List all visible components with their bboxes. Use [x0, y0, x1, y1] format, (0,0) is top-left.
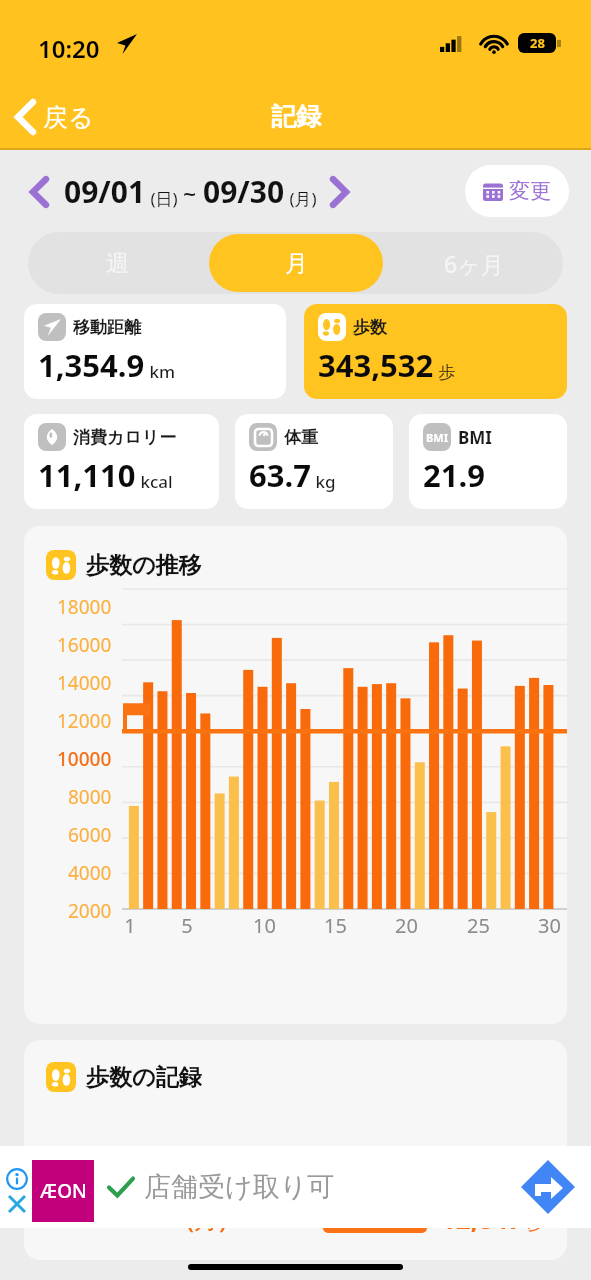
button[interactable]: 体重 — [235, 414, 393, 509]
staticText: (日) — [146, 187, 183, 210]
button[interactable]: 消費カロリー — [24, 414, 219, 509]
staticText: 5 — [181, 912, 193, 939]
staticText: 1 — [124, 912, 136, 939]
staticText: 10000 — [57, 746, 112, 772]
staticText: 歩数の記録 — [86, 1063, 202, 1092]
staticText: 戻る — [43, 102, 94, 133]
staticText: 6ヶ月 — [444, 248, 504, 279]
staticText: 09/30 — [203, 171, 285, 212]
staticText: 11,110 — [38, 454, 136, 496]
staticText: 歩数 — [353, 317, 387, 338]
staticText: 25 — [467, 912, 490, 939]
staticText: 6000 — [68, 822, 112, 848]
staticText: ÆON — [40, 1178, 87, 1204]
staticText: 12,847 — [441, 1201, 523, 1236]
staticText: km — [145, 360, 176, 383]
staticText: 343,532 — [318, 344, 434, 386]
staticText: 18000 — [57, 594, 112, 620]
button[interactable]: 戻る — [10, 92, 100, 142]
staticText: kg — [311, 470, 336, 493]
staticText: 週 — [106, 249, 129, 278]
staticText: 記録 — [271, 101, 321, 132]
staticText: 21.9 — [423, 454, 485, 496]
button[interactable]: 移動距離 — [24, 304, 286, 399]
staticText: 月 — [285, 249, 308, 278]
staticText: 店舗受け取り可 — [144, 1170, 335, 1204]
button[interactable]: 変更 — [465, 165, 569, 217]
staticText: 2024/09/02 (月) — [46, 1201, 227, 1235]
staticText: 変更 — [509, 178, 551, 204]
staticText: 28 — [530, 34, 545, 52]
staticText: 12000 — [57, 708, 112, 734]
staticText: 14000 — [57, 670, 112, 696]
other: Close ad — [7, 1194, 27, 1214]
staticText: 20 — [395, 912, 418, 939]
staticText: 歩数の推移 — [86, 551, 202, 580]
staticText: 8000 — [68, 784, 112, 810]
staticText: 63.7 — [249, 454, 311, 496]
staticText: 1,354.9 — [38, 344, 145, 386]
staticText: 2000 — [68, 898, 112, 924]
button[interactable]: 6ヶ月 — [387, 234, 561, 292]
staticText: 10:20 — [38, 32, 100, 65]
staticText: 移動距離 — [73, 317, 141, 338]
staticText: 10 — [253, 912, 276, 939]
staticText: 09/01 — [64, 171, 146, 212]
button[interactable]: 歩数 — [304, 304, 567, 399]
staticText: kcal — [136, 470, 173, 493]
staticText: 4000 — [68, 860, 112, 886]
button[interactable]: 2024/09/02 (月) — [24, 1195, 567, 1241]
button[interactable]: Next period — [329, 175, 349, 209]
staticText: 歩 — [434, 360, 456, 383]
staticText: 15 — [324, 912, 347, 939]
button[interactable] — [0, 1146, 591, 1228]
staticText: ~ — [183, 178, 203, 209]
staticText: 30 — [538, 912, 561, 939]
staticText: 消費カロリー — [73, 427, 177, 448]
staticText: BMI — [458, 426, 492, 449]
staticText: BMI — [426, 430, 448, 445]
button[interactable]: Previous period — [30, 175, 50, 209]
other: Ad info — [6, 1168, 28, 1190]
staticText: 16000 — [57, 632, 112, 658]
staticText: 目標達成 — [351, 1208, 419, 1229]
staticText: (月) — [285, 187, 317, 210]
button[interactable]: 月 — [209, 234, 383, 292]
staticText: 歩 — [523, 1211, 545, 1234]
button[interactable]: BMI — [409, 414, 567, 509]
button[interactable]: Open ad — [521, 1160, 575, 1214]
staticText: 体重 — [284, 427, 318, 448]
